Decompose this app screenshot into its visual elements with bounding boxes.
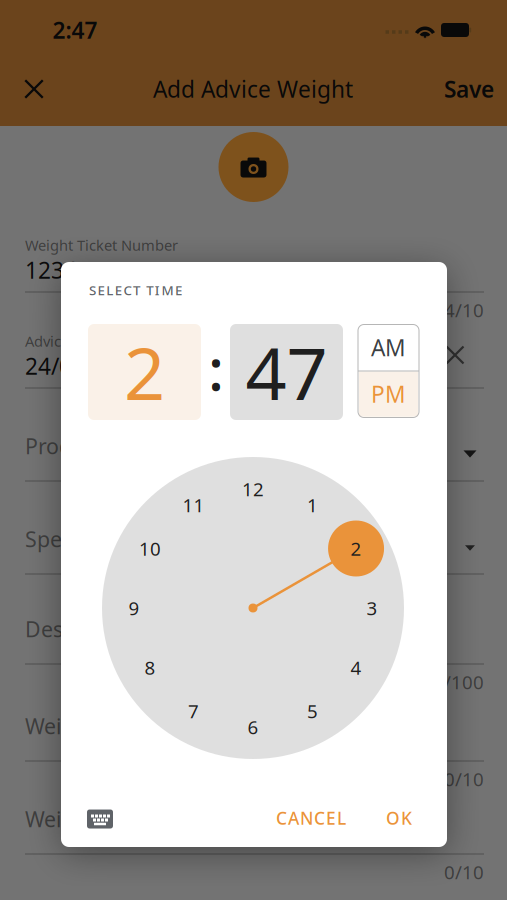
staticText: 1234: [25, 255, 77, 285]
staticText: 47: [245, 324, 327, 420]
staticText: 2:47: [52, 15, 97, 45]
staticText: 0/10: [444, 767, 484, 791]
staticText: 8: [144, 655, 155, 680]
staticText: 10: [139, 536, 161, 561]
staticText: SELECT TIME: [89, 281, 182, 299]
button[interactable]: Close: [6, 61, 62, 117]
button[interactable]: CANCEL: [267, 798, 355, 838]
button[interactable]: 2: [88, 324, 201, 420]
button[interactable]: Weight: [25, 799, 484, 855]
button[interactable]: Weight Ticket Number: [25, 231, 484, 293]
staticText: 12: [242, 477, 264, 501]
button[interactable]: Add photo: [218, 132, 288, 202]
button[interactable]: Weight: [25, 706, 484, 762]
button[interactable]: Description: [25, 609, 484, 665]
staticText: 5: [307, 699, 318, 723]
staticText: 7: [188, 699, 199, 723]
button[interactable]: Save: [429, 65, 507, 113]
staticText: CANCEL: [276, 806, 346, 829]
button[interactable]: Advice Date: [25, 327, 484, 389]
staticText: 1: [307, 492, 318, 517]
staticText: 0/100: [433, 670, 484, 694]
staticText: Advice Date: [25, 331, 105, 351]
staticText: 0/10: [444, 860, 484, 884]
button[interactable]: Species: [25, 519, 484, 575]
staticText: AM: [371, 332, 406, 362]
staticText: PM: [371, 379, 406, 409]
staticText: Weight: [25, 712, 96, 740]
staticText: 11: [182, 492, 204, 517]
staticText: 4/10: [444, 298, 484, 322]
button[interactable]: OK: [376, 798, 422, 838]
button[interactable]: 47: [230, 324, 343, 420]
staticText: 6: [247, 715, 258, 739]
staticText: Weight Ticket Number: [25, 235, 178, 255]
staticText: Species: [25, 525, 100, 553]
button[interactable]: PM: [358, 371, 419, 417]
staticText: 2: [124, 324, 165, 420]
staticText: Description: [25, 615, 141, 643]
staticText: Add Advice Weight: [153, 74, 353, 104]
staticText: :: [208, 329, 224, 407]
button[interactable]: Switch to text input: [78, 797, 122, 841]
staticText: 3: [366, 596, 377, 620]
staticText: 4: [351, 655, 362, 680]
staticText: Save: [444, 74, 494, 104]
staticText: 2: [351, 536, 362, 561]
staticText: Weight: [25, 805, 96, 833]
button[interactable]: AM: [358, 324, 419, 370]
button[interactable]: Product: [25, 426, 484, 482]
staticText: 24/01/2024: [25, 351, 145, 381]
staticText: OK: [386, 806, 412, 829]
staticText: Product: [25, 432, 103, 460]
staticText: 9: [128, 596, 139, 620]
